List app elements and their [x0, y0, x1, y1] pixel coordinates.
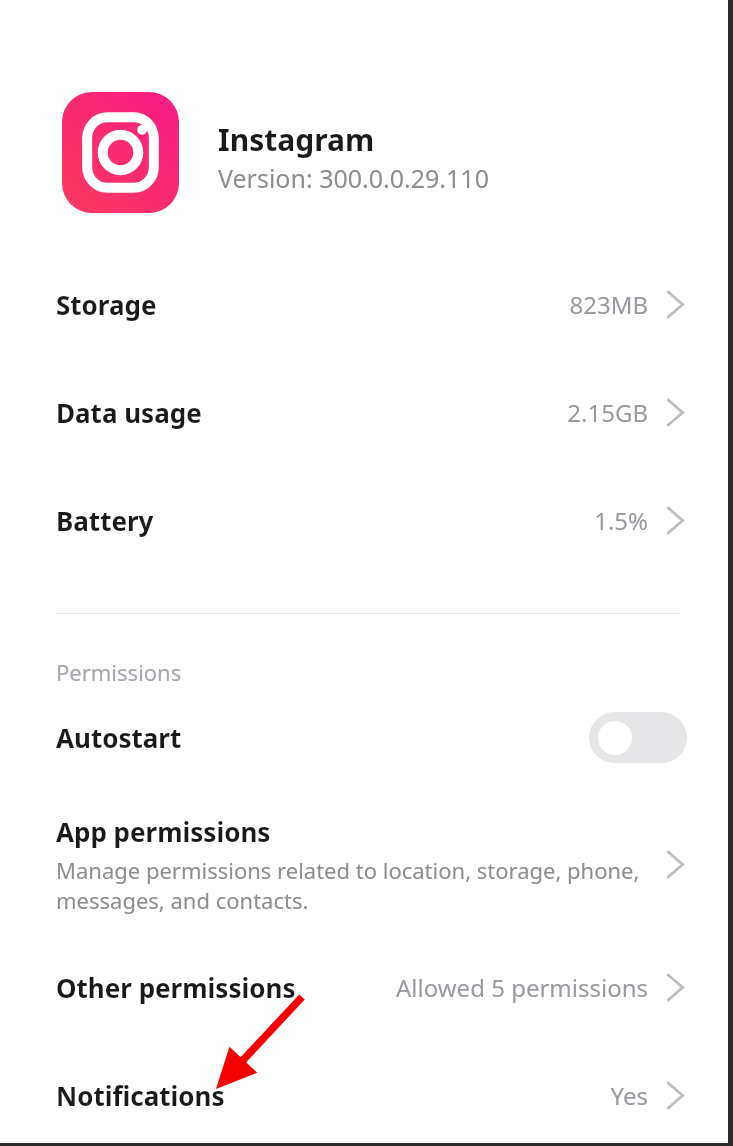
staticText: Instagram — [218, 119, 375, 160]
button[interactable]: App permissions — [0, 808, 733, 920]
button[interactable]: Autostart toggle, off — [589, 712, 687, 763]
staticText: 823MB — [569, 288, 648, 321]
button[interactable]: Data usage — [0, 375, 733, 449]
staticText: Permissions — [56, 657, 182, 687]
staticText: Battery — [56, 503, 154, 538]
staticText: 1.5% — [594, 504, 648, 537]
staticText: Data usage — [56, 395, 202, 430]
button[interactable]: Notifications — [0, 1058, 733, 1132]
button[interactable]: Autostart — [0, 700, 733, 774]
staticText: Manage permissions related to location, … — [56, 855, 640, 915]
staticText: Other permissions — [56, 970, 296, 1005]
staticText: 2.15GB — [567, 396, 648, 429]
button[interactable]: Battery — [0, 483, 733, 557]
staticText: Autostart — [56, 720, 589, 755]
staticText: Allowed 5 permissions — [396, 971, 648, 1004]
button[interactable]: Storage — [0, 267, 733, 341]
staticText: Yes — [610, 1079, 648, 1112]
staticText: App permissions — [56, 814, 271, 849]
staticText: Notifications — [56, 1078, 225, 1113]
staticText: Storage — [56, 287, 157, 322]
staticText: Version: 300.0.0.29.110 — [218, 161, 489, 195]
button[interactable]: Other permissions — [0, 950, 733, 1024]
